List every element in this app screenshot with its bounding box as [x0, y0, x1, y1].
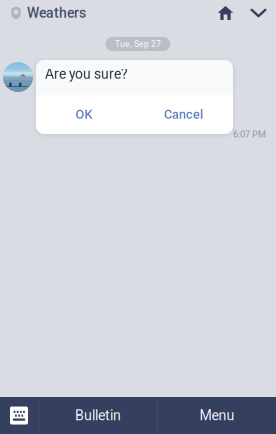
button[interactable]: Menu	[158, 397, 276, 434]
button[interactable]: OK	[36, 95, 134, 134]
button[interactable]: Home	[209, 0, 242, 26]
staticText: Tue, Sep 27	[115, 39, 161, 49]
staticText: 6:07 PM	[233, 129, 266, 140]
staticText: Are you sure?	[45, 66, 128, 82]
button[interactable]: Keyboard	[0, 397, 38, 434]
button[interactable]: More options	[242, 0, 275, 26]
staticText: Cancel	[164, 107, 203, 122]
staticText: Weathers	[27, 5, 86, 21]
button[interactable]: Bulletin	[39, 397, 157, 434]
button[interactable]: Cancel	[134, 95, 233, 134]
staticText: Menu	[199, 407, 234, 424]
staticText: Bulletin	[75, 407, 121, 424]
staticText: OK	[75, 107, 92, 122]
